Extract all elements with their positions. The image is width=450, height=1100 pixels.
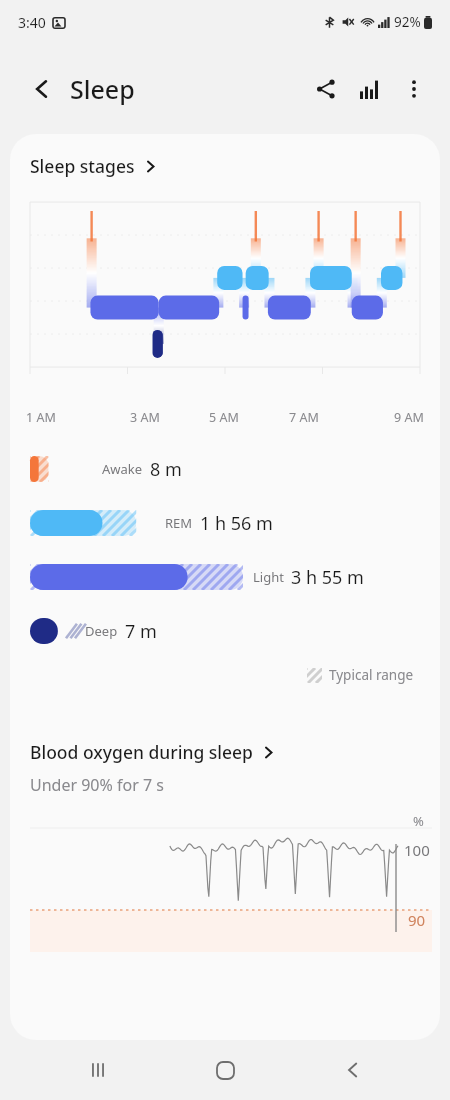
staticText: REM: [165, 514, 193, 532]
staticText: Blood oxygen during sleep: [30, 740, 253, 764]
staticText: 1 h 56 m: [200, 511, 273, 536]
button[interactable]: Light: [30, 564, 420, 590]
staticText: 90: [408, 910, 426, 930]
button[interactable]: Awake: [30, 456, 420, 482]
button[interactable]: Recent apps: [68, 1040, 128, 1100]
button[interactable]: Blood oxygen during sleep: [30, 740, 420, 764]
staticText: 3:40: [18, 13, 46, 32]
button[interactable]: REM: [30, 510, 420, 536]
staticText: 3 AM: [130, 409, 160, 426]
button[interactable]: Share: [304, 67, 348, 111]
button[interactable]: Trends: [348, 67, 392, 111]
staticText: Awake: [102, 460, 143, 478]
staticText: 8 m: [150, 457, 182, 482]
staticText: Deep: [85, 622, 118, 640]
staticText: 3 h 55 m: [291, 565, 364, 590]
staticText: 1 AM: [26, 409, 56, 426]
staticText: 7 m: [125, 619, 157, 644]
button[interactable]: Back: [323, 1040, 383, 1100]
staticText: 5 AM: [209, 409, 239, 426]
staticText: Typical range: [329, 666, 414, 684]
button[interactable]: Sleep stages: [30, 154, 420, 178]
button[interactable]: More options: [392, 67, 436, 111]
button[interactable]: Back: [20, 67, 64, 111]
staticText: %: [413, 812, 424, 830]
staticText: Sleep stages: [30, 154, 135, 178]
staticText: 100: [404, 840, 430, 860]
staticText: 92%: [394, 13, 421, 31]
staticText: Light: [253, 568, 284, 586]
staticText: Sleep: [70, 72, 135, 106]
button[interactable]: Deep: [30, 618, 420, 644]
staticText: Under 90% for 7 s: [30, 774, 164, 796]
staticText: 7 AM: [289, 409, 319, 426]
button[interactable]: Home: [195, 1040, 255, 1100]
staticText: 9 AM: [394, 409, 424, 426]
